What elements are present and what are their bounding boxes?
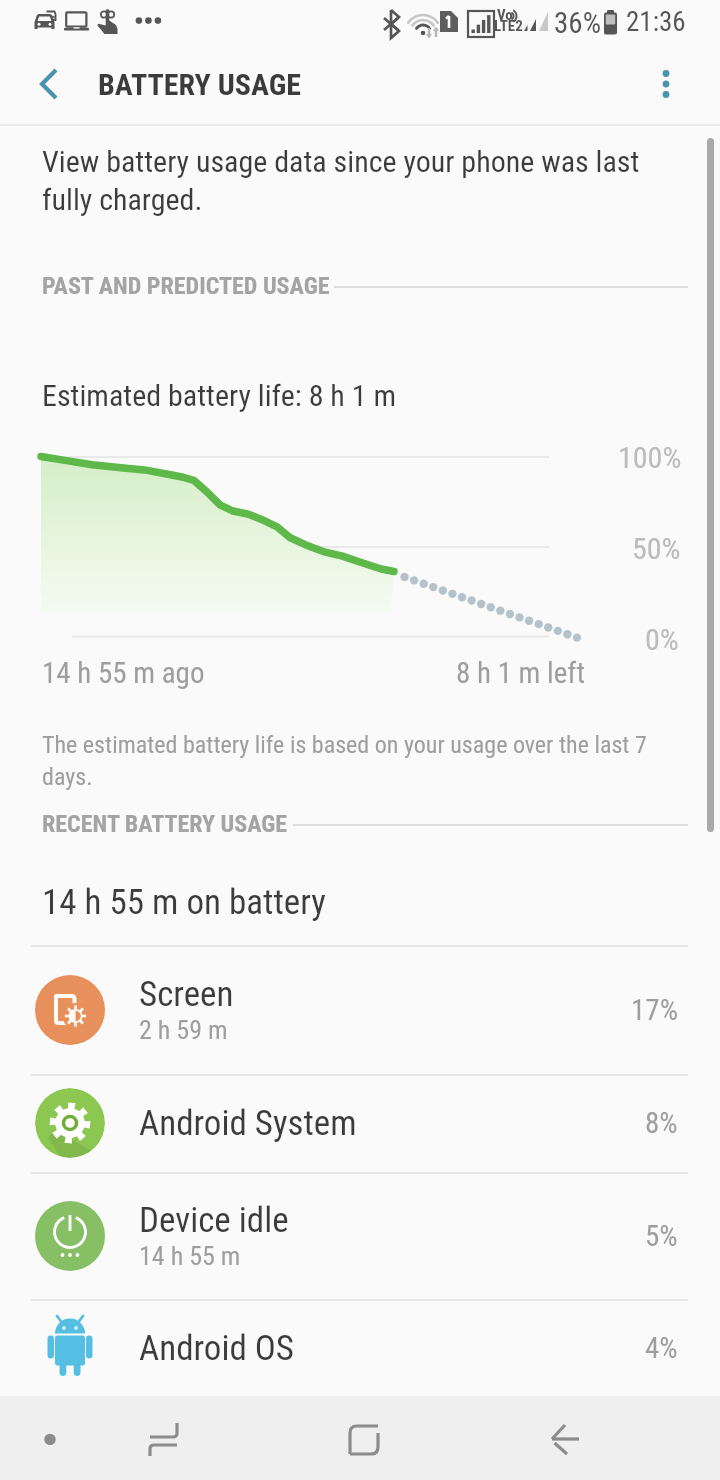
staticText: Vo xyxy=(497,6,513,24)
staticText: BATTERY USAGE xyxy=(98,67,301,102)
staticText: 14 h 55 m ago xyxy=(42,656,205,690)
staticText: 21:36 xyxy=(626,6,686,38)
staticText: 2 h 59 m xyxy=(139,1015,228,1045)
staticText: PAST AND PREDICTED USAGE xyxy=(42,272,330,300)
button[interactable]: Android System xyxy=(0,1074,720,1172)
button[interactable]: Menu xyxy=(10,1396,90,1480)
staticText: 5% xyxy=(645,1219,678,1253)
button[interactable]: Home xyxy=(326,1400,406,1480)
staticText: 36% xyxy=(554,6,601,40)
staticText: View battery usage data since your phone… xyxy=(42,144,662,217)
staticText: Android System xyxy=(139,1103,357,1144)
staticText: 100% xyxy=(618,440,682,475)
staticText: Estimated battery life: 8 h 1 m xyxy=(42,378,396,413)
button[interactable]: Device idle xyxy=(0,1172,720,1299)
staticText: 4% xyxy=(645,1331,678,1365)
button[interactable]: Screen xyxy=(0,945,720,1074)
staticText: 50% xyxy=(632,531,681,566)
button[interactable]: Back xyxy=(526,1397,606,1480)
staticText: The estimated battery life is based on y… xyxy=(42,731,647,791)
staticText: Android OS xyxy=(139,1328,295,1369)
staticText: LTE2 xyxy=(494,17,523,35)
staticText: RECENT BATTERY USAGE xyxy=(42,810,288,838)
button[interactable]: Recent apps xyxy=(127,1399,207,1480)
staticText: Device idle xyxy=(139,1200,289,1241)
staticText: 17% xyxy=(631,993,678,1027)
staticText: Screen xyxy=(139,974,234,1015)
staticText: 8 h 1 m left xyxy=(456,656,586,690)
staticText: 14 h 55 m on battery xyxy=(42,882,326,923)
staticText: 14 h 55 m xyxy=(139,1241,241,1271)
button[interactable]: Navigate up xyxy=(18,48,90,120)
button[interactable]: More options xyxy=(628,48,700,120)
staticText: 8% xyxy=(645,1106,678,1140)
staticText: 0% xyxy=(645,622,679,657)
button[interactable]: Android OS xyxy=(0,1299,720,1397)
